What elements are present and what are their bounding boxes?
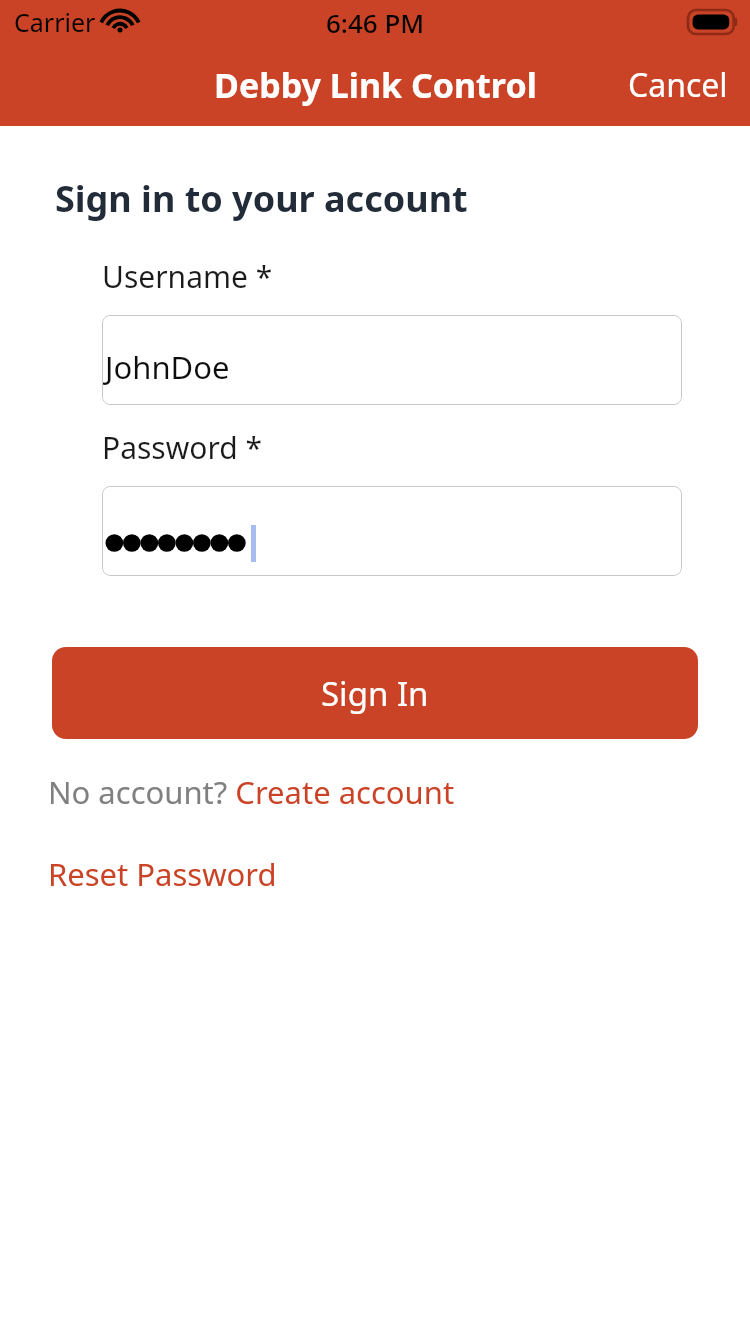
staticText: Sign in to your account — [55, 174, 468, 223]
button[interactable]: JohnDoe — [102, 315, 682, 405]
staticText: JohnDoe — [105, 346, 230, 388]
staticText: No account? Create account — [48, 771, 455, 813]
button[interactable]: Sign In — [52, 647, 698, 739]
button[interactable] — [102, 486, 682, 576]
staticText: Reset Password — [48, 853, 277, 895]
button[interactable]: No account? Create account — [48, 771, 455, 813]
staticText: Cancel — [628, 63, 728, 107]
button[interactable]: Cancel — [606, 49, 750, 121]
button[interactable]: Reset Password — [48, 853, 277, 895]
staticText: 6:46 PM — [326, 5, 425, 40]
staticText: Sign In — [321, 671, 429, 716]
staticText: Debby Link Control — [214, 62, 537, 108]
staticText: Password * — [102, 427, 263, 468]
other: Battery full — [688, 10, 740, 34]
staticText: Carrier — [14, 5, 96, 39]
staticText: Username * — [102, 256, 273, 297]
other: Wi-Fi signal — [105, 11, 135, 33]
